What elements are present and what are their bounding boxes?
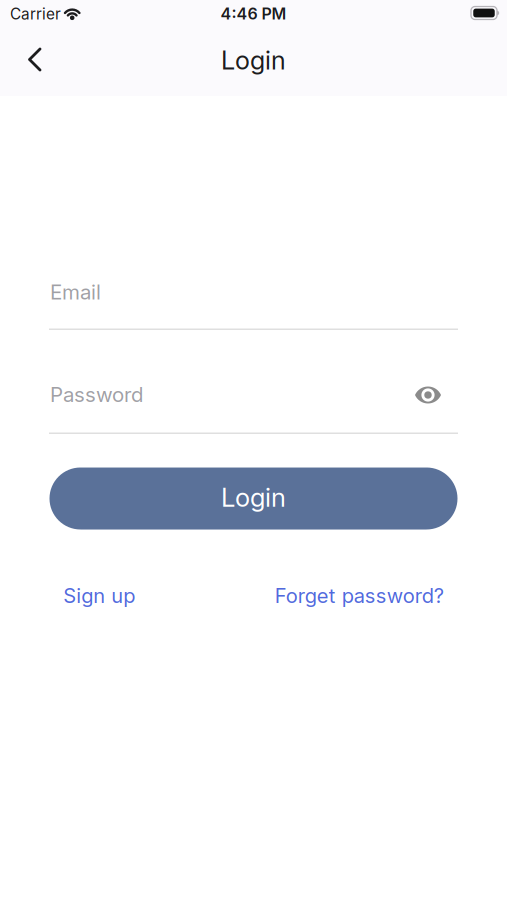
staticText: Carrier [10,5,61,23]
staticText: Login [221,45,286,76]
button[interactable] [18,43,52,77]
button[interactable]: Forget password? [275,584,444,608]
staticText: Email [50,280,101,304]
button[interactable]: Email [49,280,458,330]
staticText: Sign up [63,584,135,608]
button[interactable]: Password [49,382,458,434]
button[interactable]: Sign up [63,584,135,608]
button[interactable] [410,377,446,413]
staticText: Login [221,482,286,513]
button[interactable]: Login [49,467,457,529]
staticText: 4:46 PM [220,4,286,23]
staticText: Forget password? [275,584,444,608]
staticText: Password [50,382,144,407]
